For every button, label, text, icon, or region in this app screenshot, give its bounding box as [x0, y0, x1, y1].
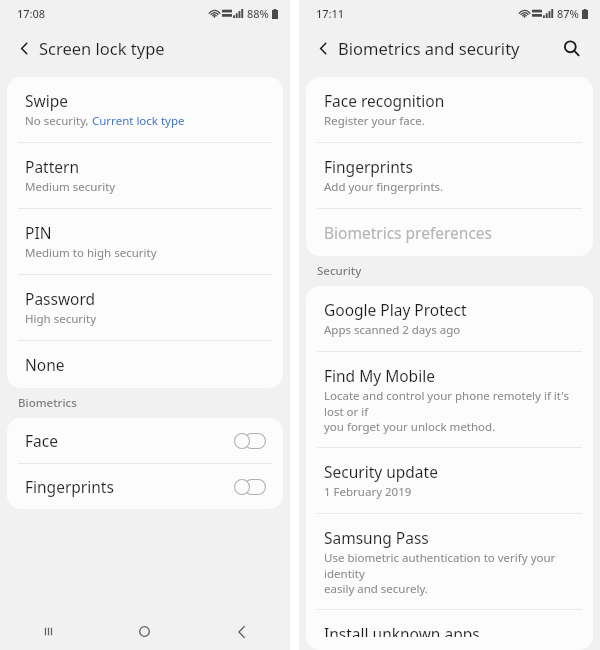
- staticText: Medium security: [25, 179, 116, 195]
- staticText: Swipe: [25, 90, 68, 111]
- button[interactable]: Biometrics preferences: [306, 209, 593, 256]
- button[interactable]: Fingerprints: [7, 464, 283, 509]
- button[interactable]: PIN: [7, 209, 283, 274]
- staticText: Install unknown apps: [324, 623, 480, 637]
- button[interactable]: Install unknown apps: [306, 610, 593, 650]
- staticText: Pattern: [25, 156, 79, 177]
- button[interactable]: Face: [7, 418, 283, 463]
- staticText: Add your fingerprints.: [324, 179, 444, 195]
- button[interactable]: Password: [7, 275, 283, 340]
- staticText: Fingerprints: [324, 156, 413, 177]
- staticText: 1 February 2019: [324, 484, 412, 500]
- button[interactable]: Back: [9, 33, 39, 63]
- button[interactable]: None: [7, 341, 283, 388]
- button[interactable]: Find My Mobile: [306, 352, 593, 447]
- staticText: Face recognition: [324, 90, 445, 111]
- button[interactable]: Search: [555, 32, 587, 64]
- staticText: Face: [25, 430, 234, 451]
- staticText: Security update: [324, 461, 438, 482]
- staticText: Locate and control your phone remotely i…: [324, 388, 577, 434]
- button[interactable]: Google Play Protect: [306, 286, 593, 351]
- button[interactable]: Recent apps: [0, 613, 96, 650]
- button[interactable]: Face recognition: [306, 77, 593, 142]
- staticText: Biometrics: [18, 395, 77, 411]
- button[interactable]: Back: [308, 33, 338, 63]
- staticText: Google Play Protect: [324, 299, 467, 320]
- staticText: Register your face.: [324, 113, 425, 129]
- staticText: Samsung Pass: [324, 527, 429, 548]
- staticText: No security,: [25, 113, 92, 129]
- button[interactable]: Samsung Pass: [306, 514, 593, 609]
- staticText: 87%: [557, 6, 579, 21]
- staticText: Security: [317, 263, 362, 279]
- staticText: Screen lock type: [39, 37, 165, 59]
- button[interactable]: Back: [193, 613, 290, 650]
- staticText: Password: [25, 288, 96, 309]
- staticText: None: [25, 354, 65, 375]
- staticText: Find My Mobile: [324, 365, 435, 386]
- staticText: 17:11: [316, 6, 345, 21]
- staticText: Apps scanned 2 days ago: [324, 322, 461, 338]
- staticText: 88%: [247, 6, 269, 21]
- staticText: Medium to high security: [25, 245, 157, 261]
- staticText: Fingerprints: [25, 476, 234, 497]
- staticText: Biometrics preferences: [324, 222, 493, 243]
- button[interactable]: Pattern: [7, 143, 283, 208]
- staticText: High security: [25, 311, 97, 327]
- staticText: PIN: [25, 222, 52, 243]
- staticText: Current lock type: [92, 113, 185, 129]
- button[interactable]: Security update: [306, 448, 593, 513]
- staticText: Use biometric authentication to verify y…: [324, 550, 577, 596]
- staticText: Biometrics and security: [338, 37, 520, 59]
- button[interactable]: Fingerprints: [306, 143, 593, 208]
- button[interactable]: Swipe: [7, 77, 283, 142]
- button[interactable]: Home: [96, 613, 193, 650]
- staticText: 17:08: [17, 6, 46, 21]
